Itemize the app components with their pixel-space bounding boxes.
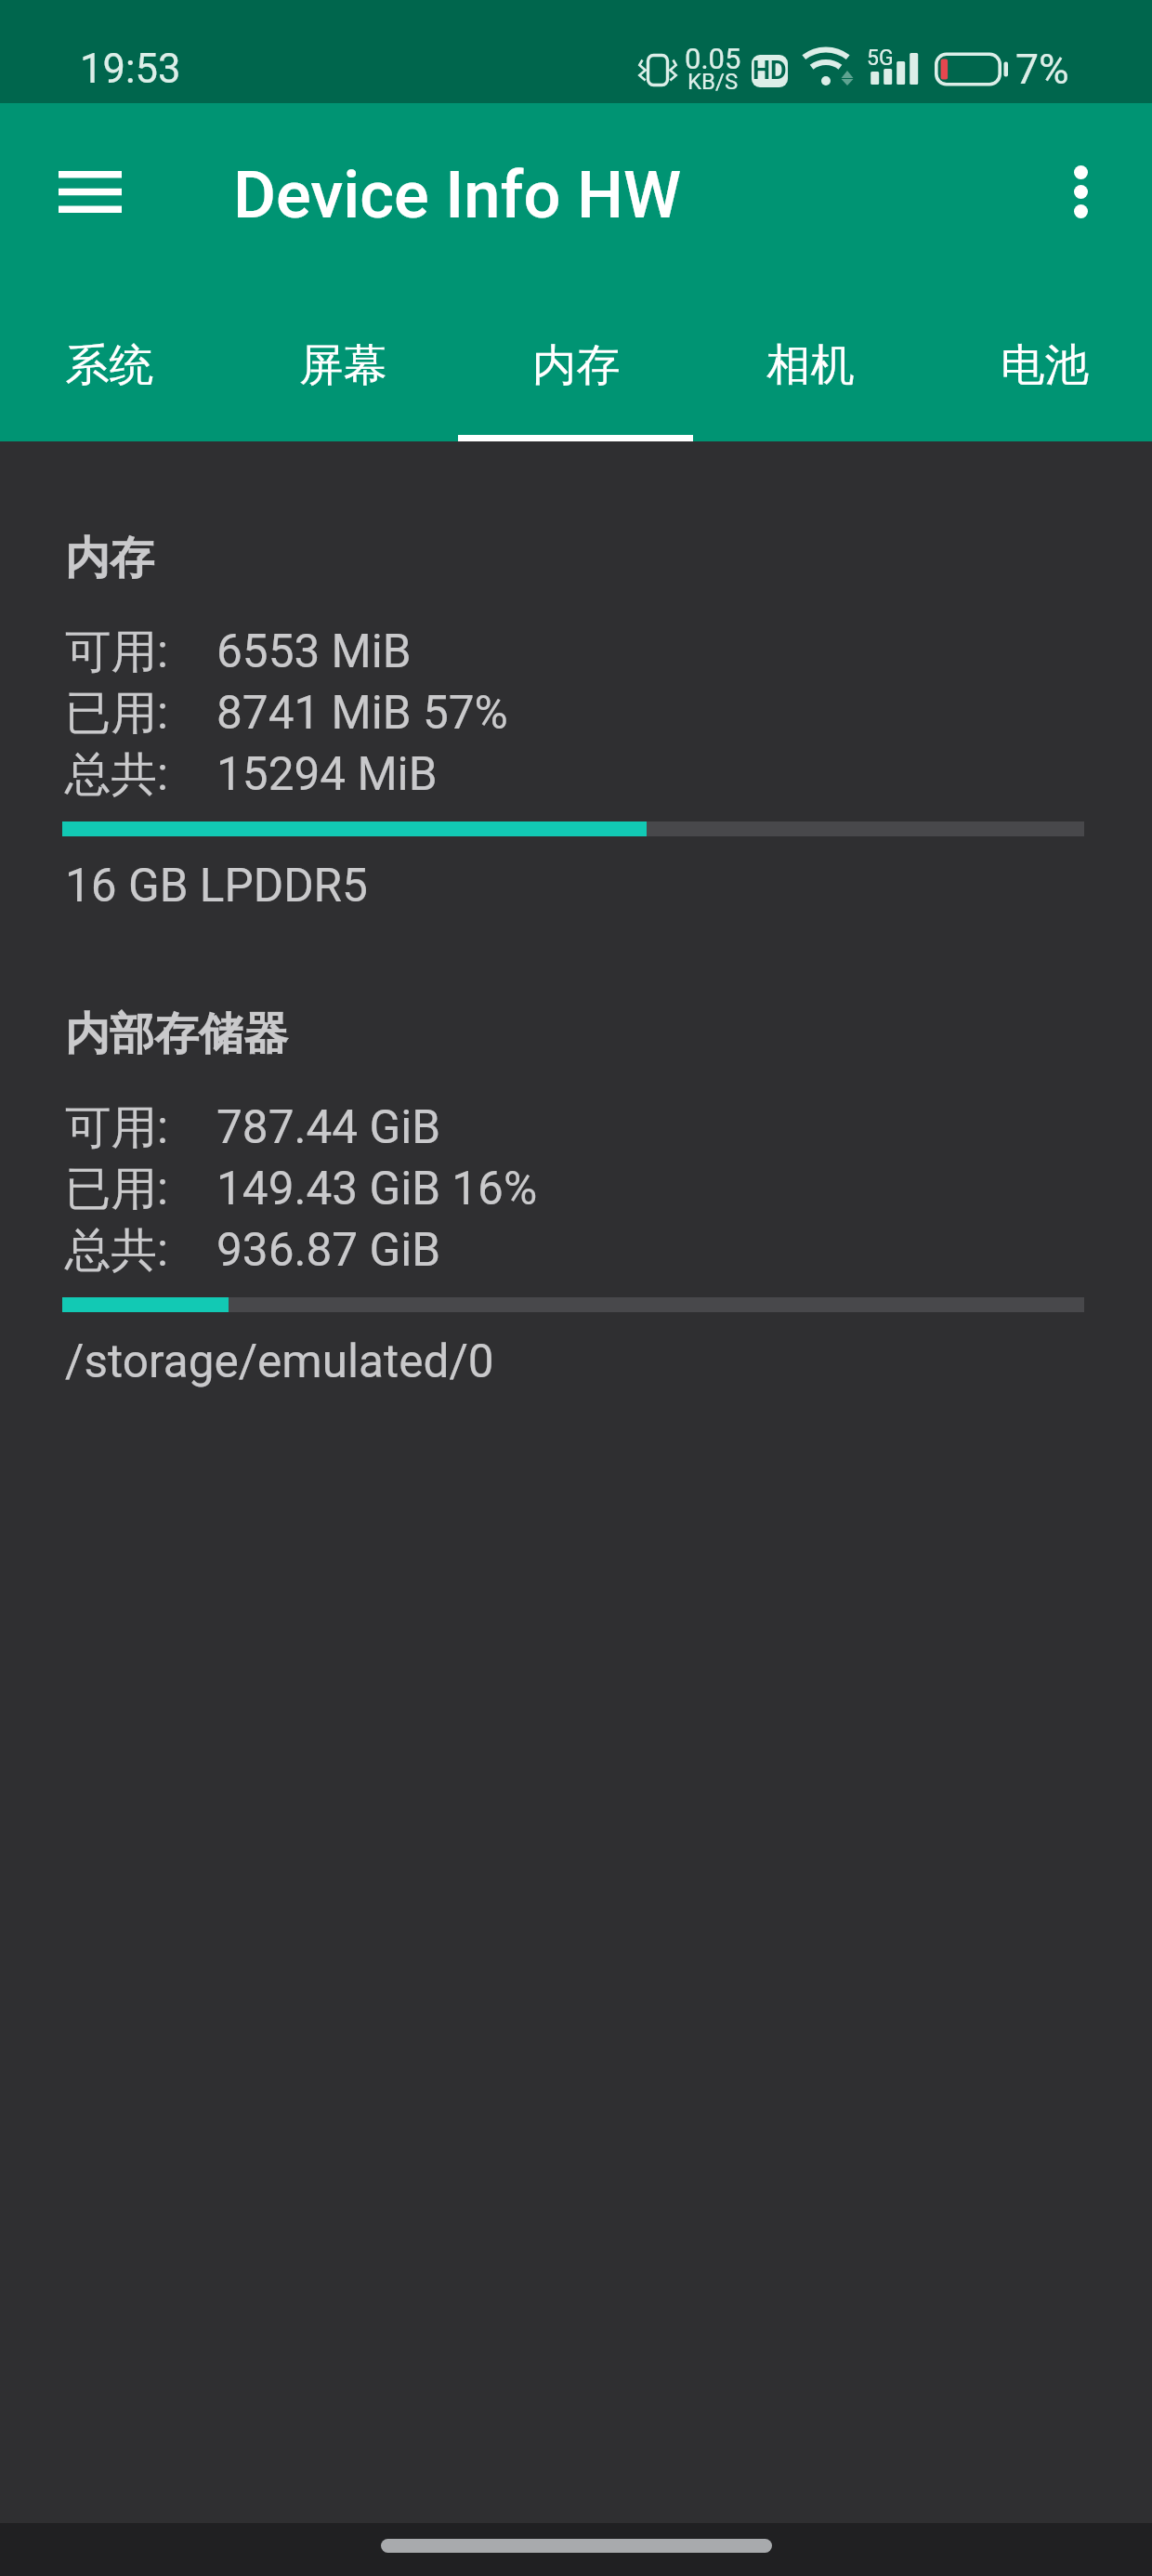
- staticText: 5G: [867, 46, 894, 71]
- button[interactable]: Open navigation drawer: [27, 128, 153, 255]
- staticText: 总共:: [65, 745, 168, 803]
- staticText: 已用:: [65, 1160, 168, 1217]
- button[interactable]: 电池: [922, 280, 1152, 441]
- staticText: 6553 MiB: [216, 624, 412, 678]
- staticText: 可用:: [65, 1098, 168, 1156]
- staticText: 16 GB LPDDR5: [65, 859, 368, 913]
- staticText: 系统: [65, 337, 153, 393]
- staticText: 0.05: [685, 42, 741, 75]
- staticText: 内部存储器: [65, 1006, 288, 1062]
- staticText: 电池: [1001, 337, 1089, 393]
- staticText: KB/S: [687, 69, 739, 95]
- staticText: 屏幕: [299, 337, 387, 393]
- button[interactable]: 系统: [0, 280, 230, 441]
- staticText: 内存: [532, 337, 621, 393]
- button[interactable]: 相机: [691, 280, 922, 441]
- staticText: 可用:: [65, 623, 168, 680]
- button[interactable]: 内存: [461, 280, 691, 441]
- staticText: 787.44 GiB: [216, 1100, 441, 1154]
- staticText: Device Info HW: [233, 157, 682, 234]
- staticText: 相机: [766, 337, 855, 393]
- staticText: 15294 MiB: [216, 747, 438, 801]
- staticText: 内存: [65, 531, 154, 586]
- staticText: 936.87 GiB: [216, 1223, 441, 1277]
- button[interactable]: 屏幕: [230, 280, 461, 441]
- button[interactable]: More options: [1025, 136, 1136, 247]
- staticText: /storage/emulated/0: [65, 1334, 494, 1388]
- staticText: 8741 MiB 57%: [216, 686, 508, 740]
- staticText: 已用:: [65, 684, 168, 742]
- staticText: 7%: [1015, 46, 1069, 94]
- staticText: 总共:: [65, 1221, 168, 1279]
- staticText: HD: [753, 56, 787, 85]
- staticText: 149.43 GiB 16%: [216, 1162, 538, 1216]
- staticText: 19:53: [80, 46, 181, 93]
